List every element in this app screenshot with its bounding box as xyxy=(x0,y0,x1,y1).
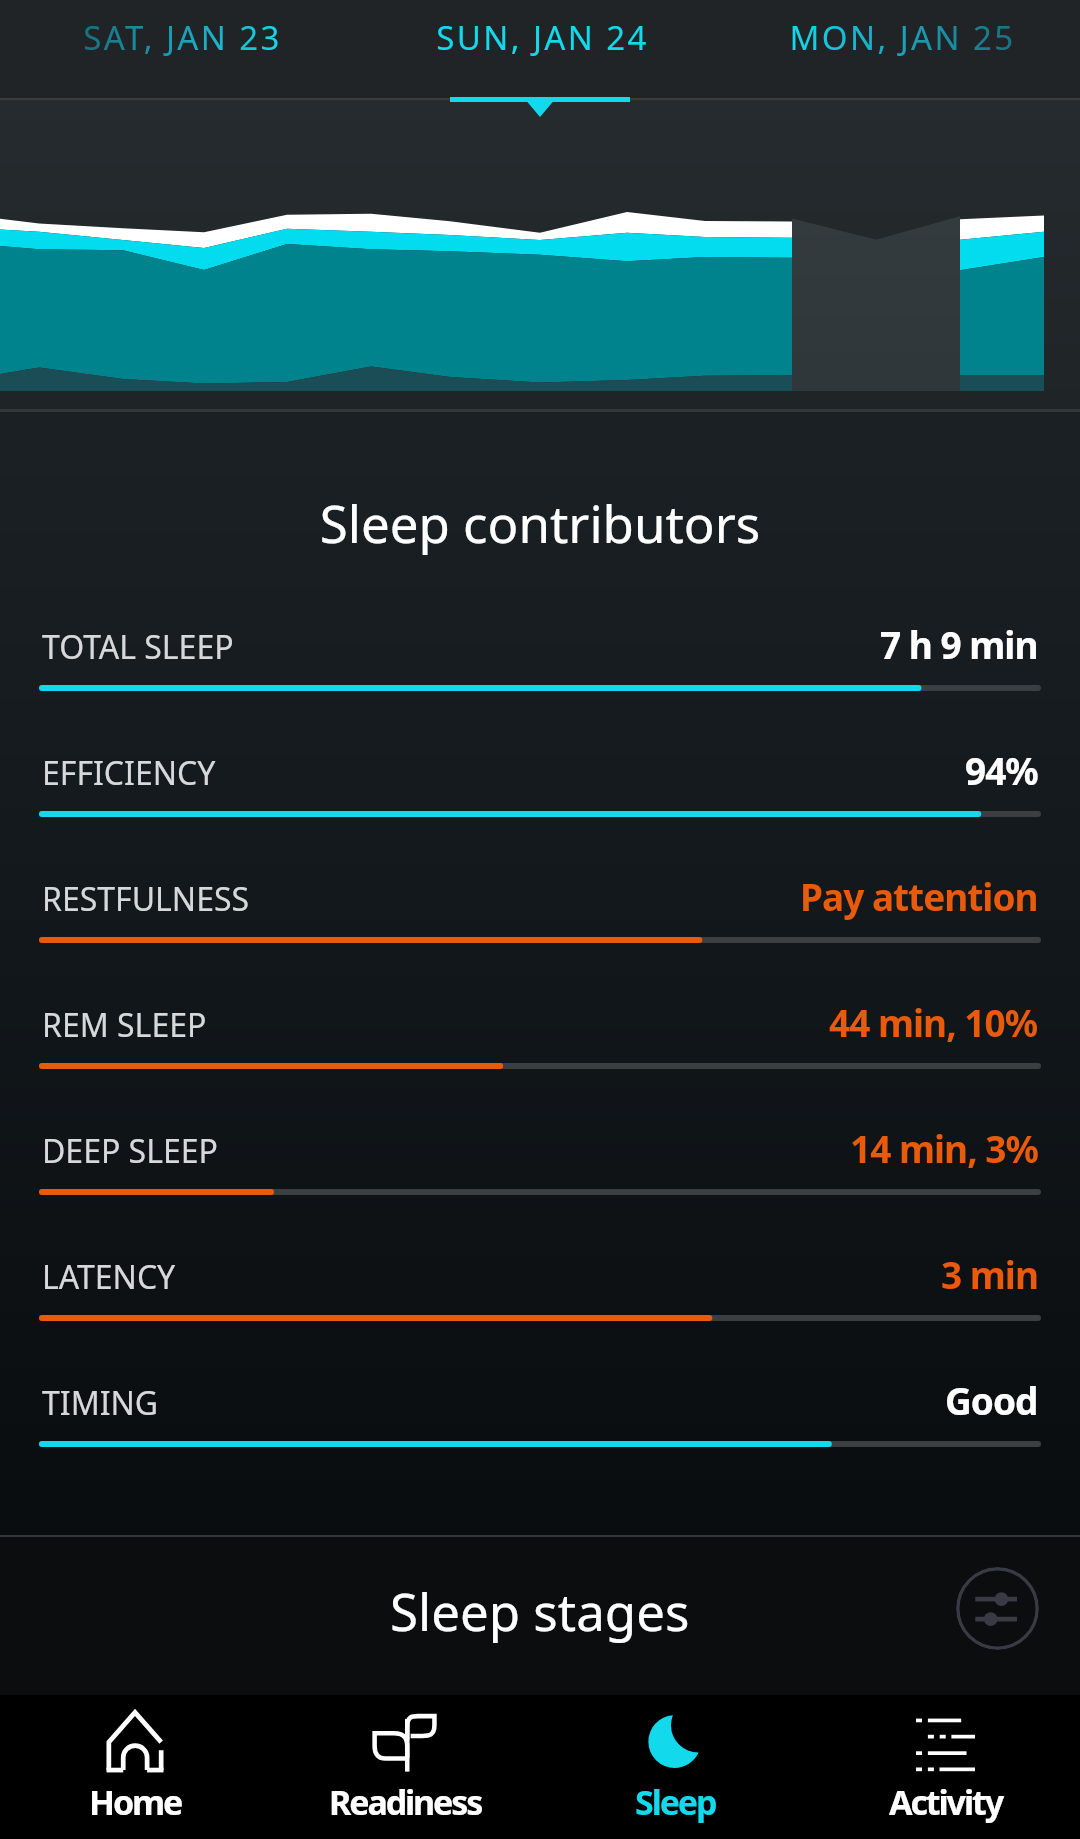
button[interactable]: Home xyxy=(0,1695,270,1839)
staticText: SAT, JAN 23 xyxy=(83,15,282,60)
button[interactable]: Sleep xyxy=(540,1695,810,1839)
staticText: REM SLEEP xyxy=(42,1003,207,1047)
staticText: Home xyxy=(89,1779,182,1825)
staticText: SUN, JAN 24 xyxy=(436,15,649,60)
staticText: Activity xyxy=(889,1779,1002,1825)
staticText: 94% xyxy=(965,745,1038,795)
staticText: Sleep stages xyxy=(390,1576,690,1645)
button[interactable]: Sleep stages settings xyxy=(956,1567,1039,1650)
staticText: 7 h 9 min xyxy=(880,619,1038,669)
staticText: LATENCY xyxy=(42,1255,176,1299)
staticText: TOTAL SLEEP xyxy=(42,625,234,669)
staticText: TIMING xyxy=(42,1381,159,1425)
staticText: Sleep contributors xyxy=(0,488,1080,557)
button[interactable]: LATENCY xyxy=(0,1241,1080,1367)
staticText: 44 min, 10% xyxy=(829,997,1038,1047)
staticText: 14 min, 3% xyxy=(850,1123,1038,1173)
button[interactable]: SAT, JAN 23 xyxy=(0,0,360,98)
staticText: Good xyxy=(945,1375,1038,1425)
staticText: DEEP SLEEP xyxy=(42,1129,218,1173)
button[interactable]: Activity xyxy=(810,1695,1080,1839)
staticText: Readiness xyxy=(329,1779,482,1825)
staticText: MON, JAN 25 xyxy=(789,15,1016,60)
button[interactable]: SUN, JAN 24 xyxy=(360,0,720,98)
staticText: Pay attention xyxy=(800,871,1038,921)
button[interactable]: DEEP SLEEP xyxy=(0,1115,1080,1241)
staticText: Sleep xyxy=(635,1779,716,1825)
staticText: EFFICIENCY xyxy=(42,751,216,795)
staticText: RESTFULNESS xyxy=(42,877,250,921)
staticText: 3 min xyxy=(941,1249,1038,1299)
button[interactable]: TOTAL SLEEP xyxy=(0,611,1080,737)
button[interactable]: EFFICIENCY xyxy=(0,737,1080,863)
button[interactable]: MON, JAN 25 xyxy=(720,0,1080,98)
button[interactable]: REM SLEEP xyxy=(0,989,1080,1115)
button[interactable]: TIMING xyxy=(0,1367,1080,1493)
button[interactable]: Readiness xyxy=(270,1695,540,1839)
button[interactable]: RESTFULNESS xyxy=(0,863,1080,989)
